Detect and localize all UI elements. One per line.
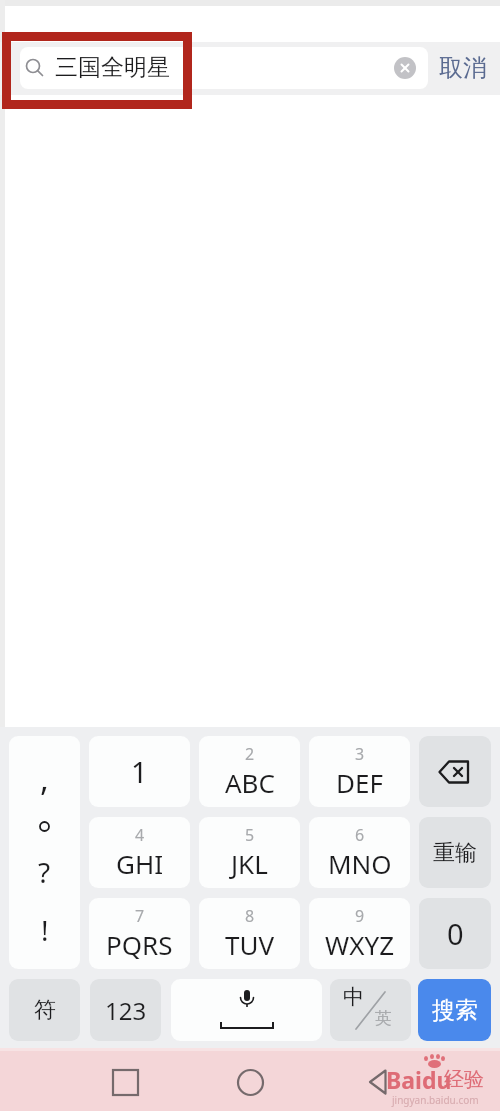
button[interactable] bbox=[419, 736, 491, 807]
staticText: 1 bbox=[131, 752, 148, 791]
staticText: 经验 bbox=[444, 1067, 484, 1092]
staticText: 搜索 bbox=[432, 996, 478, 1025]
staticText: 5 bbox=[245, 824, 255, 846]
staticText: 4 bbox=[135, 824, 145, 846]
button[interactable] bbox=[171, 979, 322, 1041]
button[interactable] bbox=[230, 1062, 270, 1102]
staticText: 中 bbox=[343, 984, 364, 1010]
button[interactable]: 1 bbox=[89, 736, 190, 807]
staticText: 符 bbox=[34, 996, 56, 1024]
button[interactable] bbox=[358, 1062, 398, 1102]
staticText: JKL bbox=[231, 846, 268, 881]
button[interactable]: 搜索 bbox=[418, 979, 491, 1041]
staticText: 重输 bbox=[433, 839, 477, 867]
button[interactable]: 7 bbox=[89, 898, 190, 969]
staticText: TUV bbox=[225, 927, 275, 962]
button[interactable]: , bbox=[9, 736, 80, 969]
button[interactable]: 8 bbox=[199, 898, 300, 969]
staticText: 3 bbox=[355, 743, 365, 765]
button[interactable]: 5 bbox=[199, 817, 300, 888]
staticText: DEF bbox=[336, 765, 383, 800]
staticText: ? bbox=[38, 853, 51, 891]
button[interactable]: 2 bbox=[199, 736, 300, 807]
button[interactable]: 9 bbox=[309, 898, 410, 969]
button[interactable]: 123 bbox=[90, 979, 161, 1041]
staticText: 9 bbox=[355, 905, 365, 927]
staticText: WXYZ bbox=[325, 927, 395, 962]
staticText: jingyan.baidu.com bbox=[392, 1093, 479, 1107]
staticText: 8 bbox=[245, 905, 255, 927]
button[interactable]: 重输 bbox=[419, 817, 491, 888]
button[interactable]: 三国全明星 bbox=[20, 47, 428, 89]
staticText: Baidu bbox=[386, 1064, 452, 1095]
staticText: 123 bbox=[105, 994, 147, 1027]
button[interactable]: 符 bbox=[9, 979, 80, 1041]
staticText: 英 bbox=[375, 1008, 392, 1029]
staticText: MNO bbox=[328, 846, 392, 881]
button[interactable]: 3 bbox=[309, 736, 410, 807]
button[interactable]: 6 bbox=[309, 817, 410, 888]
staticText: 2 bbox=[245, 743, 255, 765]
staticText: ! bbox=[41, 911, 49, 949]
button[interactable]: 取消 bbox=[432, 47, 494, 89]
button[interactable]: 4 bbox=[89, 817, 190, 888]
staticText: PQRS bbox=[106, 927, 173, 962]
button[interactable]: 0 bbox=[419, 898, 491, 969]
staticText: 6 bbox=[355, 824, 365, 846]
button[interactable] bbox=[105, 1062, 145, 1102]
staticText: 取消 bbox=[439, 53, 487, 83]
staticText: ABC bbox=[225, 765, 275, 800]
staticText: 三国全明星 bbox=[55, 53, 170, 82]
staticText: 0 bbox=[447, 914, 464, 953]
button[interactable]: 中 bbox=[330, 979, 411, 1041]
staticText: 7 bbox=[135, 905, 145, 927]
staticText: , bbox=[40, 756, 49, 801]
staticText: GHI bbox=[116, 846, 164, 881]
button[interactable] bbox=[394, 57, 416, 79]
